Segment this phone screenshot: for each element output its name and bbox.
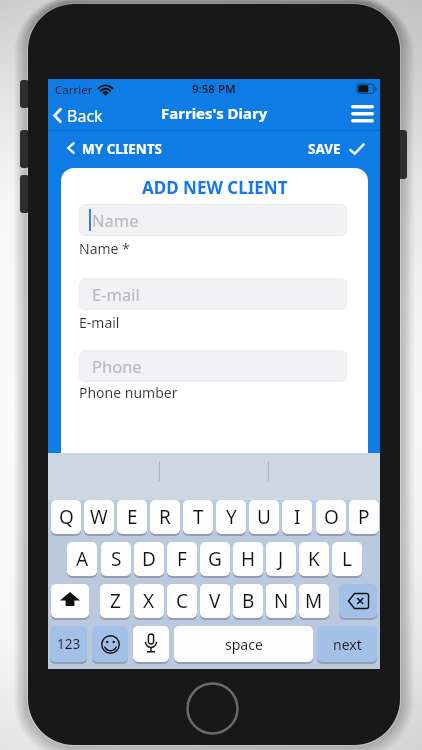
- button[interactable]: P: [349, 500, 379, 534]
- staticText: Name *: [79, 239, 130, 258]
- staticText: B: [242, 588, 255, 614]
- staticText: I: [294, 504, 301, 530]
- button[interactable]: O: [316, 500, 346, 534]
- staticText: Name: [92, 209, 139, 231]
- staticText: F: [177, 546, 187, 572]
- staticText: R: [159, 504, 171, 530]
- staticText: Back: [67, 105, 103, 127]
- button[interactable]: J: [266, 542, 296, 576]
- staticText: Carrier: [55, 82, 93, 98]
- staticText: Y: [226, 504, 237, 530]
- button[interactable]: R: [150, 500, 180, 534]
- staticText: next: [333, 635, 362, 654]
- staticText: D: [142, 546, 156, 572]
- button[interactable]: X: [134, 584, 164, 618]
- staticText: S: [111, 546, 122, 572]
- staticText: X: [143, 588, 155, 614]
- button[interactable]: Y: [216, 500, 246, 534]
- button[interactable]: E-mail: [79, 278, 347, 310]
- button[interactable]: Z: [100, 584, 130, 618]
- button[interactable]: Q: [51, 500, 81, 534]
- button[interactable]: A: [67, 542, 97, 576]
- staticText: M: [305, 588, 323, 614]
- staticText: K: [308, 546, 320, 572]
- button[interactable]: T: [183, 500, 213, 534]
- staticText: V: [209, 588, 221, 614]
- staticText: J: [278, 546, 284, 572]
- staticText: E-mail: [92, 283, 140, 305]
- button[interactable]: V: [200, 584, 230, 618]
- staticText: space: [225, 635, 263, 654]
- button[interactable]: B: [233, 584, 263, 618]
- staticText: T: [193, 504, 204, 530]
- button[interactable]: E: [117, 500, 147, 534]
- staticText: L: [342, 546, 352, 572]
- staticText: E-mail: [79, 313, 120, 332]
- button[interactable]: G: [200, 542, 230, 576]
- staticText: Farries's Diary: [161, 103, 268, 123]
- button[interactable]: U: [249, 500, 279, 534]
- button[interactable]: next: [317, 626, 377, 662]
- button[interactable]: SAVE: [306, 135, 370, 161]
- staticText: W: [90, 504, 108, 530]
- staticText: O: [324, 504, 339, 530]
- button[interactable]: L: [332, 542, 362, 576]
- staticText: 123: [57, 635, 81, 653]
- button[interactable]: H: [233, 542, 263, 576]
- button[interactable]: N: [266, 584, 296, 618]
- staticText: N: [274, 588, 289, 614]
- button[interactable]: space: [174, 626, 313, 662]
- button[interactable]: C: [167, 584, 197, 618]
- staticText: Phone number: [79, 383, 178, 402]
- button[interactable]: K: [299, 542, 329, 576]
- staticText: Q: [59, 504, 74, 530]
- button[interactable]: [92, 626, 128, 662]
- staticText: E: [127, 504, 138, 530]
- button[interactable]: 123: [50, 626, 87, 662]
- staticText: G: [208, 546, 222, 572]
- staticText: Phone: [92, 355, 142, 377]
- button[interactable]: W: [84, 500, 114, 534]
- staticText: 9:58 PM: [192, 81, 236, 97]
- button[interactable]: F: [167, 542, 197, 576]
- button[interactable]: Name: [79, 204, 347, 236]
- button[interactable]: Phone: [79, 350, 347, 382]
- button[interactable]: M: [299, 584, 329, 618]
- button[interactable]: S: [101, 542, 131, 576]
- button[interactable]: [339, 584, 377, 618]
- button[interactable]: I: [282, 500, 312, 534]
- button[interactable]: D: [134, 542, 164, 576]
- button[interactable]: [346, 101, 378, 129]
- button[interactable]: [51, 584, 89, 618]
- staticText: ADD NEW CLIENT: [142, 176, 288, 199]
- staticText: P: [358, 504, 370, 530]
- staticText: C: [176, 588, 189, 614]
- button[interactable]: Back: [50, 99, 150, 131]
- staticText: MY CLIENTS: [82, 140, 162, 158]
- staticText: H: [241, 546, 256, 572]
- staticText: A: [76, 546, 89, 572]
- staticText: Z: [110, 588, 121, 614]
- staticText: SAVE: [308, 140, 341, 158]
- button[interactable]: MY CLIENTS: [64, 135, 214, 161]
- staticText: U: [257, 504, 271, 530]
- button[interactable]: [133, 626, 169, 662]
